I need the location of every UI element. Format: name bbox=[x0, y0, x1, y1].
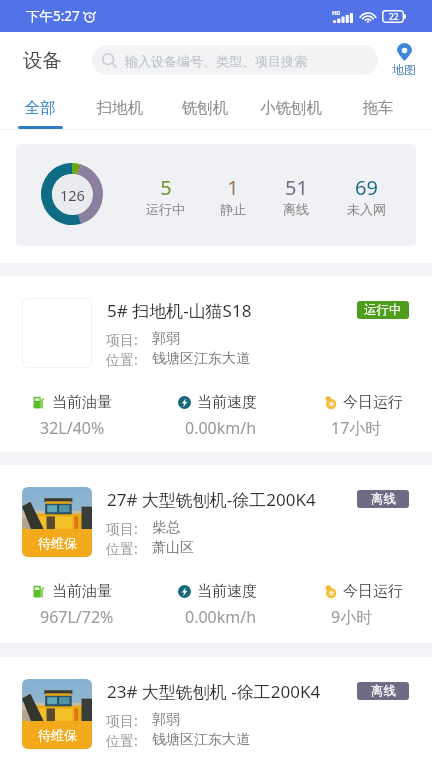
button[interactable]: 输入设备编号、类型、项目搜索 bbox=[92, 45, 378, 75]
staticText: 扫地机 bbox=[88, 98, 152, 118]
staticText: 位置: bbox=[106, 731, 138, 750]
staticText: 0.00km/h bbox=[185, 606, 257, 628]
staticText: 静止 bbox=[220, 201, 246, 217]
button[interactable]: 小铣刨机 bbox=[250, 88, 332, 130]
staticText: 离线 bbox=[283, 201, 309, 217]
staticText: 9小时 bbox=[331, 606, 373, 628]
staticText: 输入设备编号、类型、项目搜索 bbox=[125, 53, 307, 69]
staticText: 运行中 bbox=[146, 201, 185, 217]
staticText: 离线 bbox=[371, 683, 396, 699]
button[interactable]: 离线 bbox=[357, 682, 409, 700]
staticText: 柴总 bbox=[152, 519, 180, 537]
staticText: 项目: bbox=[106, 519, 138, 538]
staticText: 钱塘区江东大道 bbox=[152, 731, 250, 749]
staticText: 126 bbox=[60, 185, 85, 205]
staticText: 今日运行 bbox=[343, 582, 403, 601]
button[interactable]: 5 bbox=[135, 174, 195, 232]
staticText: 下午5:27 bbox=[26, 7, 80, 25]
staticText: 钱塘区江东大道 bbox=[152, 350, 250, 368]
button[interactable]: 5# 扫地机-山猫S18 bbox=[0, 276, 432, 452]
staticText: 当前速度 bbox=[197, 582, 257, 601]
staticText: 1 bbox=[227, 174, 239, 201]
staticText: 69 bbox=[355, 174, 378, 201]
staticText: 51 bbox=[285, 174, 308, 201]
staticText: 22 bbox=[389, 11, 399, 23]
staticText: 设备 bbox=[23, 48, 62, 73]
button[interactable]: 铣刨机 bbox=[173, 88, 237, 130]
staticText: 待维保 bbox=[38, 727, 77, 743]
staticText: 0.00km/h bbox=[185, 417, 257, 439]
staticText: 967L/72% bbox=[40, 606, 114, 628]
staticText: 铣刨机 bbox=[173, 98, 237, 118]
button[interactable]: 待维保 bbox=[0, 657, 432, 768]
button[interactable]: 地图 Map bbox=[386, 43, 422, 77]
staticText: 23# 大型铣刨机 -徐工200K4 bbox=[107, 680, 321, 703]
button[interactable]: 运行中 bbox=[357, 301, 409, 319]
staticText: 地图 bbox=[392, 62, 416, 77]
staticText: 当前速度 bbox=[197, 393, 257, 412]
staticText: 离线 bbox=[371, 491, 396, 507]
staticText: 小铣刨机 bbox=[250, 98, 332, 118]
staticText: 郭弱 bbox=[152, 330, 180, 348]
staticText: 5# 扫地机-山猫S18 bbox=[107, 299, 252, 322]
button[interactable]: 51 bbox=[266, 174, 326, 232]
staticText: 萧山区 bbox=[152, 539, 194, 557]
button[interactable]: 69 bbox=[336, 174, 396, 232]
button[interactable]: 扫地机 bbox=[88, 88, 152, 130]
staticText: 27# 大型铣刨机-徐工200K4 bbox=[107, 488, 316, 511]
button[interactable]: 待维保 bbox=[0, 465, 432, 643]
staticText: 当前油量 bbox=[52, 582, 112, 601]
staticText: 项目: bbox=[106, 330, 138, 349]
staticText: 今日运行 bbox=[343, 393, 403, 412]
button[interactable]: 离线 bbox=[357, 490, 409, 508]
staticText: 全部 bbox=[17, 98, 63, 118]
staticText: 待维保 bbox=[38, 535, 77, 551]
staticText: 运行中 bbox=[364, 302, 402, 318]
button[interactable]: 1 bbox=[203, 174, 263, 232]
staticText: 未入网 bbox=[347, 201, 386, 217]
staticText: 32L/40% bbox=[40, 417, 105, 439]
staticText: 拖车 bbox=[355, 98, 401, 118]
staticText: HD bbox=[332, 9, 341, 16]
staticText: 位置: bbox=[106, 350, 138, 369]
staticText: 5 bbox=[160, 174, 172, 201]
staticText: 郭弱 bbox=[152, 711, 180, 729]
staticText: 当前油量 bbox=[52, 393, 112, 412]
staticText: 17小时 bbox=[331, 417, 382, 439]
staticText: 位置: bbox=[106, 539, 138, 558]
staticText: 项目: bbox=[106, 711, 138, 730]
button[interactable]: 全部 bbox=[17, 88, 63, 130]
button[interactable]: 拖车 bbox=[355, 88, 401, 130]
